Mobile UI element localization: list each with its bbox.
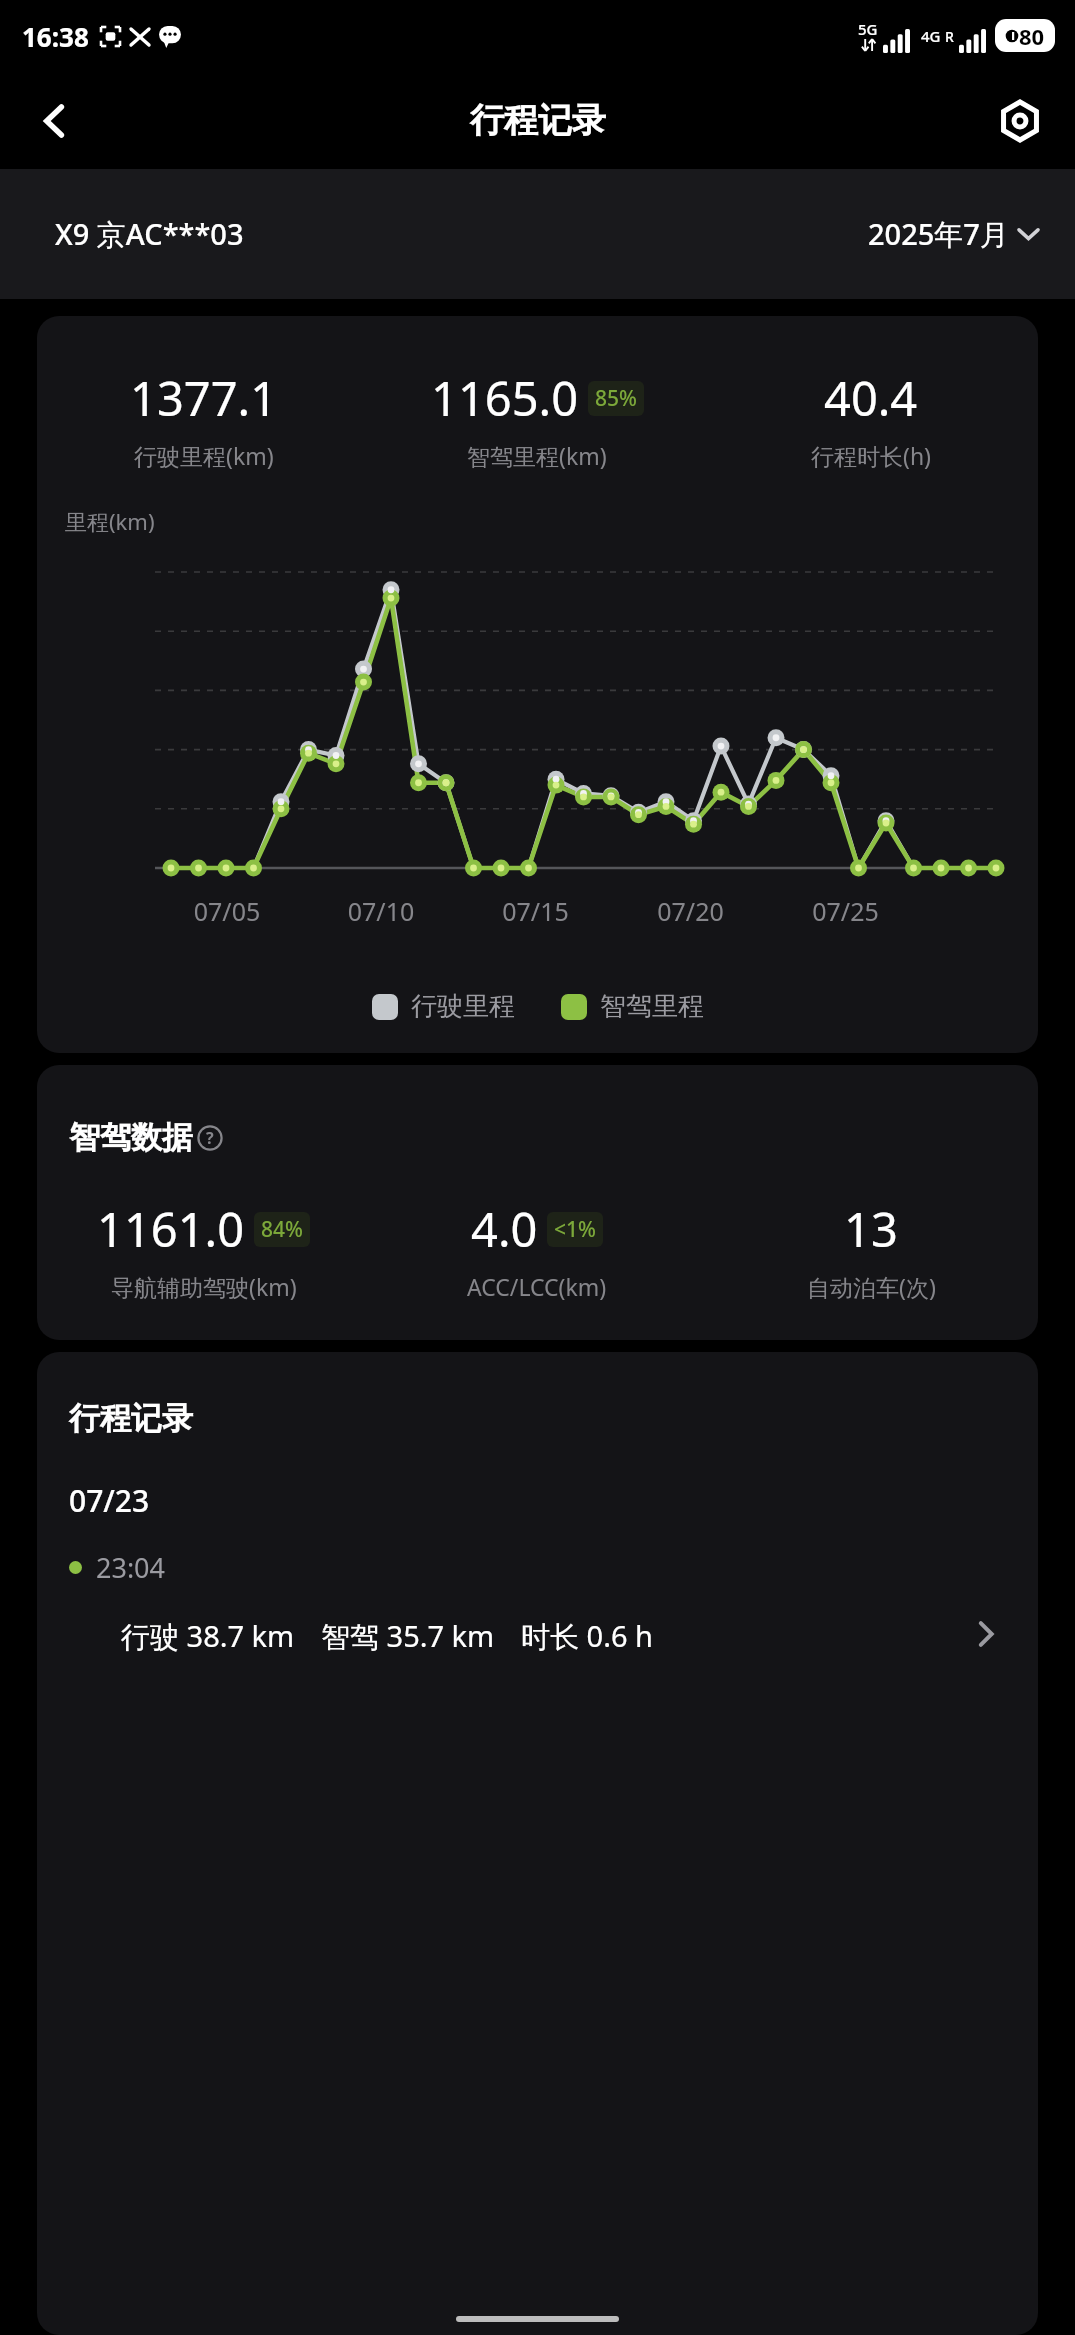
staticText: 07/20	[618, 894, 763, 928]
staticText: 16:38	[22, 19, 89, 54]
staticText: 智驾里程(km)	[467, 440, 607, 471]
staticText: 1165.0	[431, 366, 579, 430]
staticText: 行程记录	[470, 99, 606, 142]
staticText: 4G	[921, 26, 941, 46]
staticText: 07/05	[155, 894, 299, 928]
button[interactable]: Info	[197, 1125, 223, 1151]
staticText: 40.4	[824, 366, 918, 430]
staticText: 80	[1019, 21, 1045, 51]
staticText: 行驶里程(km)	[134, 440, 274, 471]
staticText: 1377.1	[130, 366, 278, 430]
staticText: 85%	[595, 384, 637, 413]
staticText: 5G	[858, 19, 878, 39]
staticText: X9 京AC***03	[55, 214, 244, 254]
button[interactable]: 2025年7月	[868, 214, 1039, 254]
staticText: 07/15	[463, 894, 608, 928]
staticText: 智驾里程	[600, 990, 704, 1023]
staticText: 行驶里程	[411, 990, 515, 1023]
staticText: 07/23	[69, 1480, 150, 1521]
staticText: R	[945, 27, 954, 46]
staticText: ?	[206, 1127, 214, 1149]
staticText: 自动泊车(次)	[807, 1271, 936, 1302]
staticText: 智驾数据	[69, 1118, 193, 1157]
staticText: 行程时长(h)	[811, 440, 932, 471]
button[interactable]: 23:04	[37, 1549, 1038, 1656]
staticText: 1161.0	[97, 1197, 245, 1261]
staticText: 智驾 35.7 km	[321, 1616, 495, 1656]
staticText: 84%	[261, 1215, 303, 1244]
staticText: 行驶 38.7 km	[121, 1616, 295, 1656]
staticText: 里程(km)	[65, 506, 155, 536]
staticText: 导航辅助驾驶(km)	[111, 1271, 297, 1302]
staticText: <1%	[554, 1215, 596, 1244]
staticText: 07/10	[309, 894, 453, 928]
button[interactable]: Back	[20, 86, 90, 156]
staticText: ACC/LCC(km)	[467, 1271, 607, 1302]
button[interactable]: Settings	[985, 86, 1055, 156]
staticText: 2025年7月	[868, 214, 1009, 254]
staticText: 4.0	[471, 1197, 538, 1261]
staticText: 23:04	[96, 1549, 166, 1586]
staticText: 13	[844, 1197, 898, 1261]
staticText: 07/25	[773, 894, 918, 928]
staticText: 行程记录	[69, 1399, 193, 1438]
staticText: 时长 0.6 h	[521, 1616, 653, 1656]
